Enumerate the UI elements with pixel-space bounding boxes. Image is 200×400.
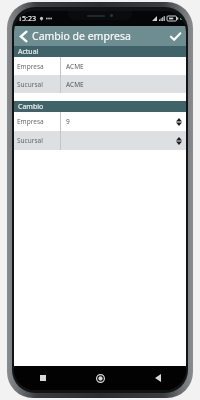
button[interactable]: Sucursal bbox=[14, 75, 186, 93]
staticText: Cambio bbox=[18, 102, 44, 112]
staticText: Empresa bbox=[17, 117, 44, 126]
button[interactable]: Select Empresa bbox=[172, 112, 186, 131]
button[interactable]: Select Sucursal bbox=[172, 131, 186, 150]
staticText: Empresa bbox=[17, 62, 44, 71]
button[interactable]: Home bbox=[72, 366, 129, 390]
staticText: Sucursal bbox=[17, 80, 43, 89]
button[interactable]: Confirm bbox=[164, 26, 186, 46]
button[interactable]: Back bbox=[14, 26, 32, 46]
staticText: Sucursal bbox=[17, 136, 43, 145]
button[interactable]: Back bbox=[129, 366, 186, 390]
button[interactable]: Recent apps bbox=[14, 366, 72, 390]
staticText: ACME bbox=[66, 80, 84, 89]
button[interactable]: Empresa bbox=[14, 112, 186, 131]
staticText: Actual bbox=[18, 47, 39, 57]
button[interactable]: Sucursal bbox=[14, 131, 186, 150]
staticText: 9 bbox=[66, 117, 70, 126]
staticText: ACME bbox=[66, 62, 84, 71]
staticText: 15:23 bbox=[18, 14, 36, 24]
staticText: Cambio de empresa bbox=[32, 29, 164, 43]
button[interactable]: Empresa bbox=[14, 57, 186, 75]
